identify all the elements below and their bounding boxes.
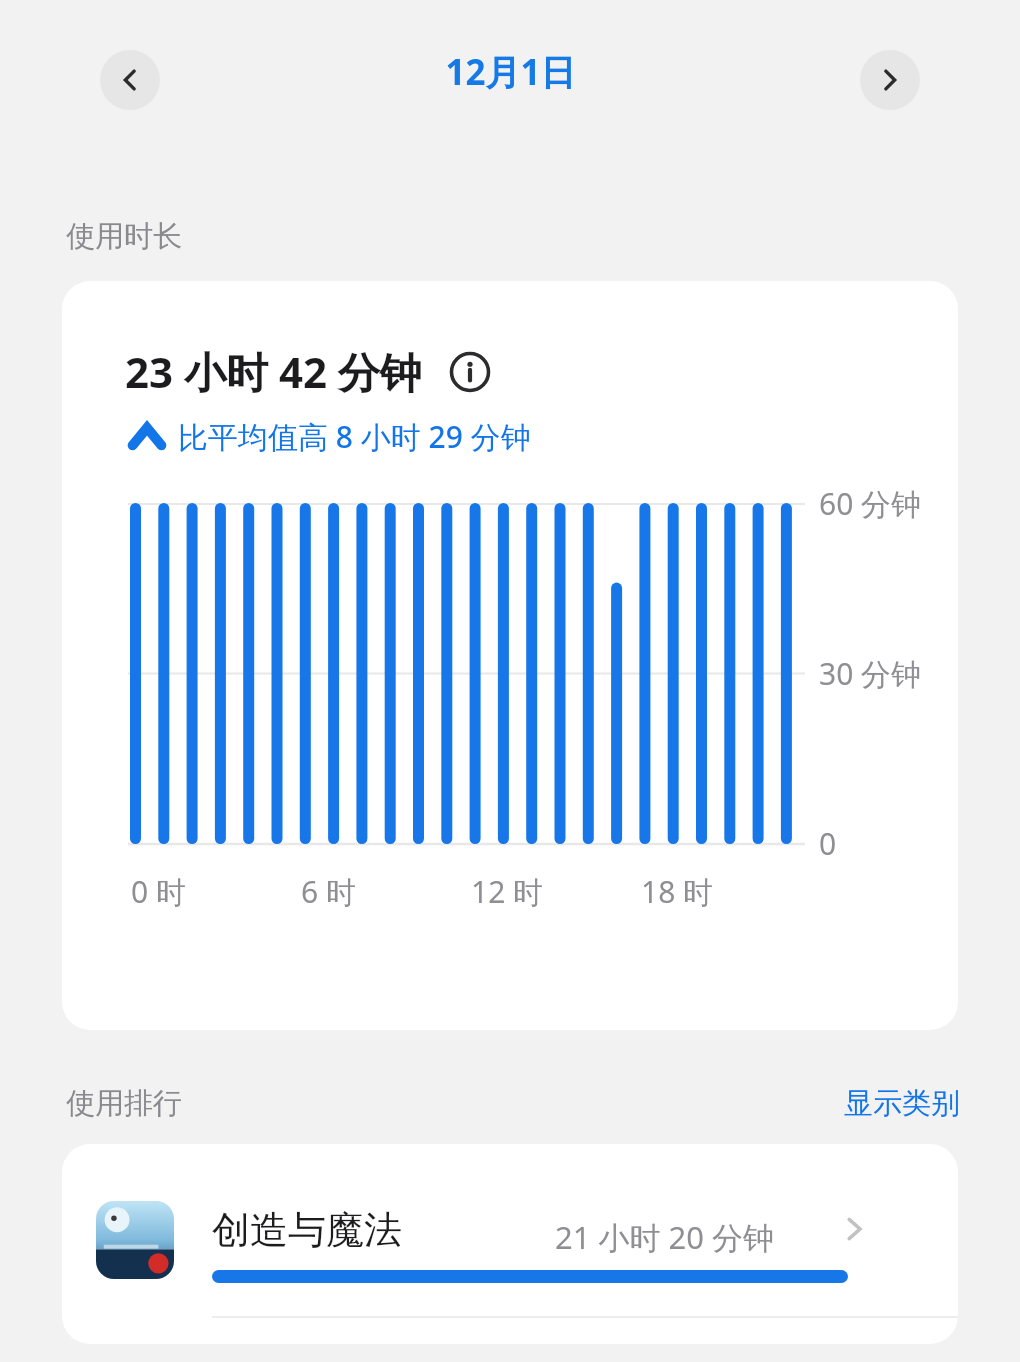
staticText: 使用时长: [66, 218, 182, 255]
other: Open app details: [827, 1202, 881, 1256]
button[interactable]: 显示类别: [844, 1085, 960, 1122]
button[interactable]: Previous day: [100, 50, 160, 110]
button[interactable]: 创造与魔法: [62, 1144, 958, 1316]
staticText: 使用排行: [66, 1085, 182, 1122]
button[interactable]: More information: [448, 350, 492, 394]
staticText: 18 时: [641, 871, 714, 912]
staticText: 12月1日: [445, 48, 576, 96]
staticText: 60 分钟: [819, 483, 922, 524]
staticText: 30 分钟: [819, 653, 922, 694]
staticText: 显示类别: [844, 1085, 960, 1122]
staticText: 23 小时 42 分钟: [125, 343, 422, 400]
staticText: 6 时: [301, 871, 356, 912]
staticText: 创造与魔法: [212, 1206, 402, 1254]
button[interactable]: 23 小时 42 分钟: [62, 281, 958, 1030]
staticText: 0: [819, 823, 837, 864]
button[interactable]: Next day: [860, 50, 920, 110]
staticText: 比平均值高 8 小时 29 分钟: [178, 416, 531, 457]
staticText: 12 时: [471, 871, 544, 912]
staticText: 21 小时 20 分钟: [555, 1216, 775, 1258]
staticText: 0 时: [131, 871, 186, 912]
